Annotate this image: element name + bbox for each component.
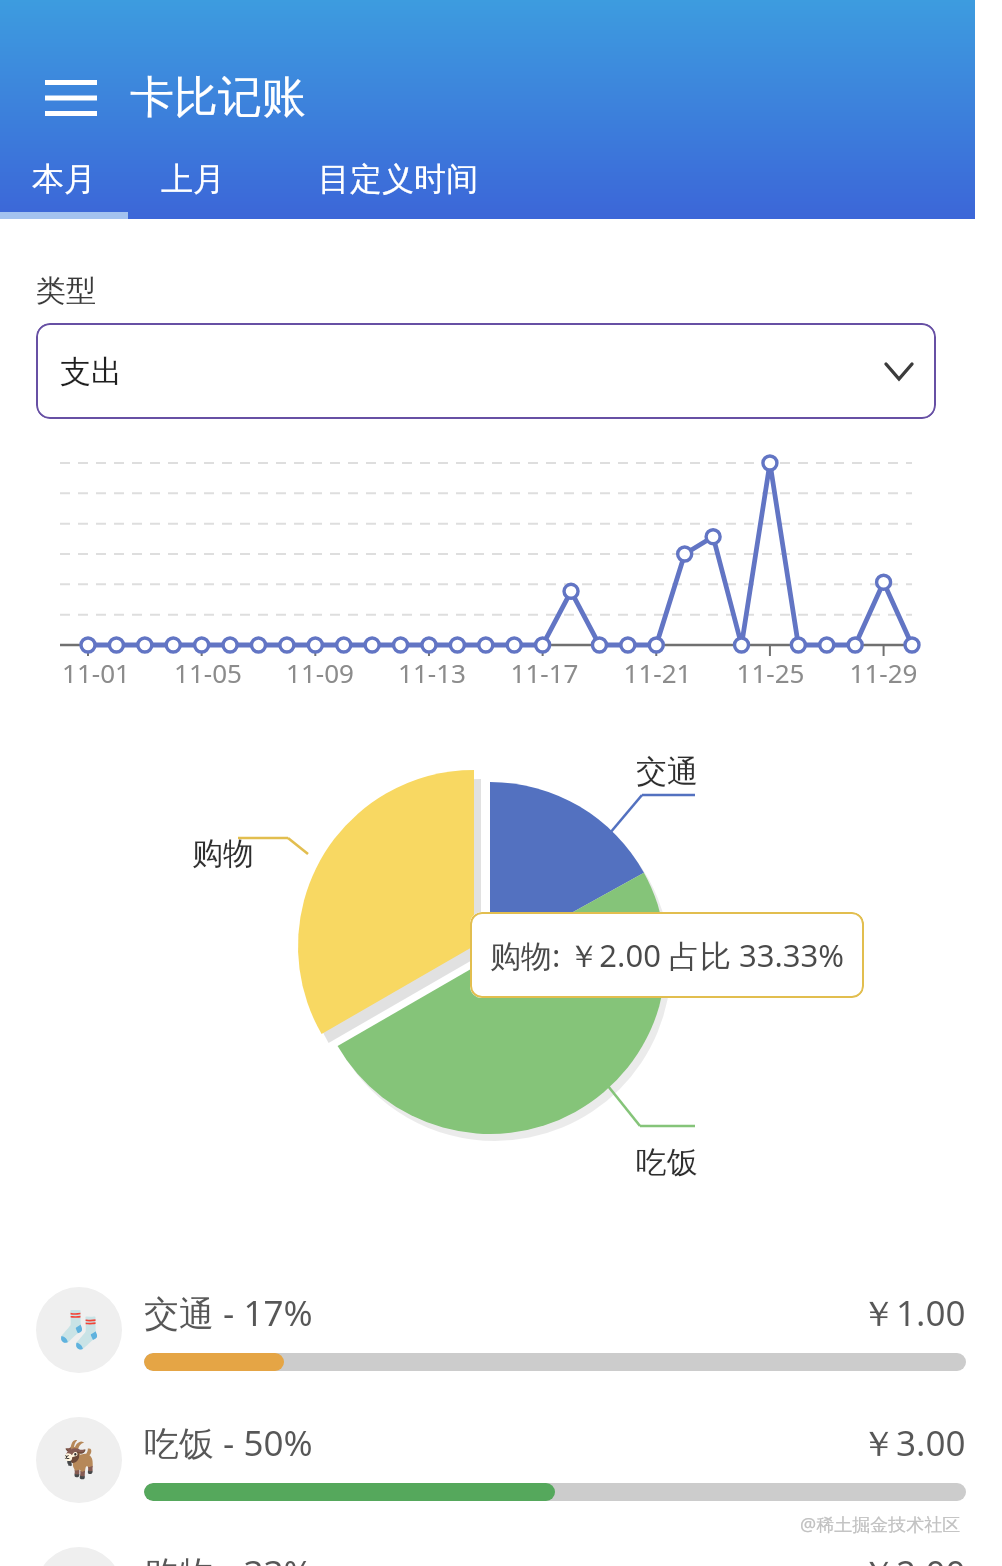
staticText: 类型: [36, 272, 96, 310]
staticText: 🧦: [57, 1309, 102, 1351]
staticText: 11-25: [714, 655, 827, 690]
staticText: 支出: [60, 352, 122, 391]
button[interactable]: 🐐: [0, 1400, 1002, 1520]
button[interactable]: 🧦: [0, 1270, 1002, 1390]
button[interactable]: Menu: [40, 73, 102, 123]
staticText: ￥1.00: [861, 1289, 966, 1337]
staticText: 11-17: [488, 655, 601, 690]
staticText: 卡比记账: [130, 70, 306, 125]
button[interactable]: 目定义时间: [258, 148, 538, 210]
staticText: 🐐: [57, 1439, 102, 1481]
staticText: 本月: [32, 159, 96, 199]
button[interactable]: 本月: [0, 148, 128, 210]
button[interactable]: 上月: [128, 148, 258, 210]
staticText: 11-13: [376, 655, 488, 690]
staticText: 上月: [161, 159, 225, 199]
staticText: 11-01: [40, 655, 152, 690]
staticText: ￥3.00: [861, 1419, 966, 1467]
staticText: 11-21: [601, 655, 714, 690]
staticText: ￥2.00: [861, 1549, 966, 1566]
staticText: 11-29: [827, 655, 940, 690]
staticText: 11-05: [152, 655, 264, 690]
staticText: 购物: [192, 834, 254, 873]
button[interactable]: 支出: [36, 323, 936, 419]
staticText: 11-09: [264, 655, 376, 690]
staticText: 购物 - 33%: [144, 1549, 313, 1566]
staticText: 交通 - 17%: [144, 1289, 313, 1337]
staticText: 交通: [636, 752, 698, 791]
button[interactable]: 🛍: [0, 1530, 1002, 1566]
staticText: @稀土掘金技术社区: [800, 1512, 961, 1537]
staticText: 吃饭 - 50%: [144, 1419, 313, 1467]
staticText: 吃饭: [636, 1143, 698, 1182]
staticText: 目定义时间: [318, 159, 478, 199]
staticText: 购物: ￥2.00 占比 33.33%: [490, 934, 844, 976]
